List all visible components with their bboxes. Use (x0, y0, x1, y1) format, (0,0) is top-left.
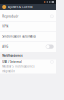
button[interactable]: Reproducir (0, 11, 56, 22)
staticText: VPN (2, 25, 8, 28)
staticText: Reproducir (2, 15, 18, 18)
staticText: Ajustes & Cuenta (8, 5, 33, 9)
staticText: USB / Internal (2, 60, 22, 64)
staticText: Notificaciones (2, 54, 22, 57)
staticText: Sincronización automática (2, 35, 35, 38)
button[interactable]: USB / Internal (0, 59, 56, 73)
button[interactable]: Sincronización automática (0, 32, 56, 42)
button[interactable]: VPN (0, 22, 56, 32)
button[interactable]: AVG (0, 42, 56, 52)
staticText: Mostrar 5 notificaciones (2, 65, 34, 68)
staticText: AVG (2, 45, 8, 48)
staticText: migración (2, 69, 15, 73)
